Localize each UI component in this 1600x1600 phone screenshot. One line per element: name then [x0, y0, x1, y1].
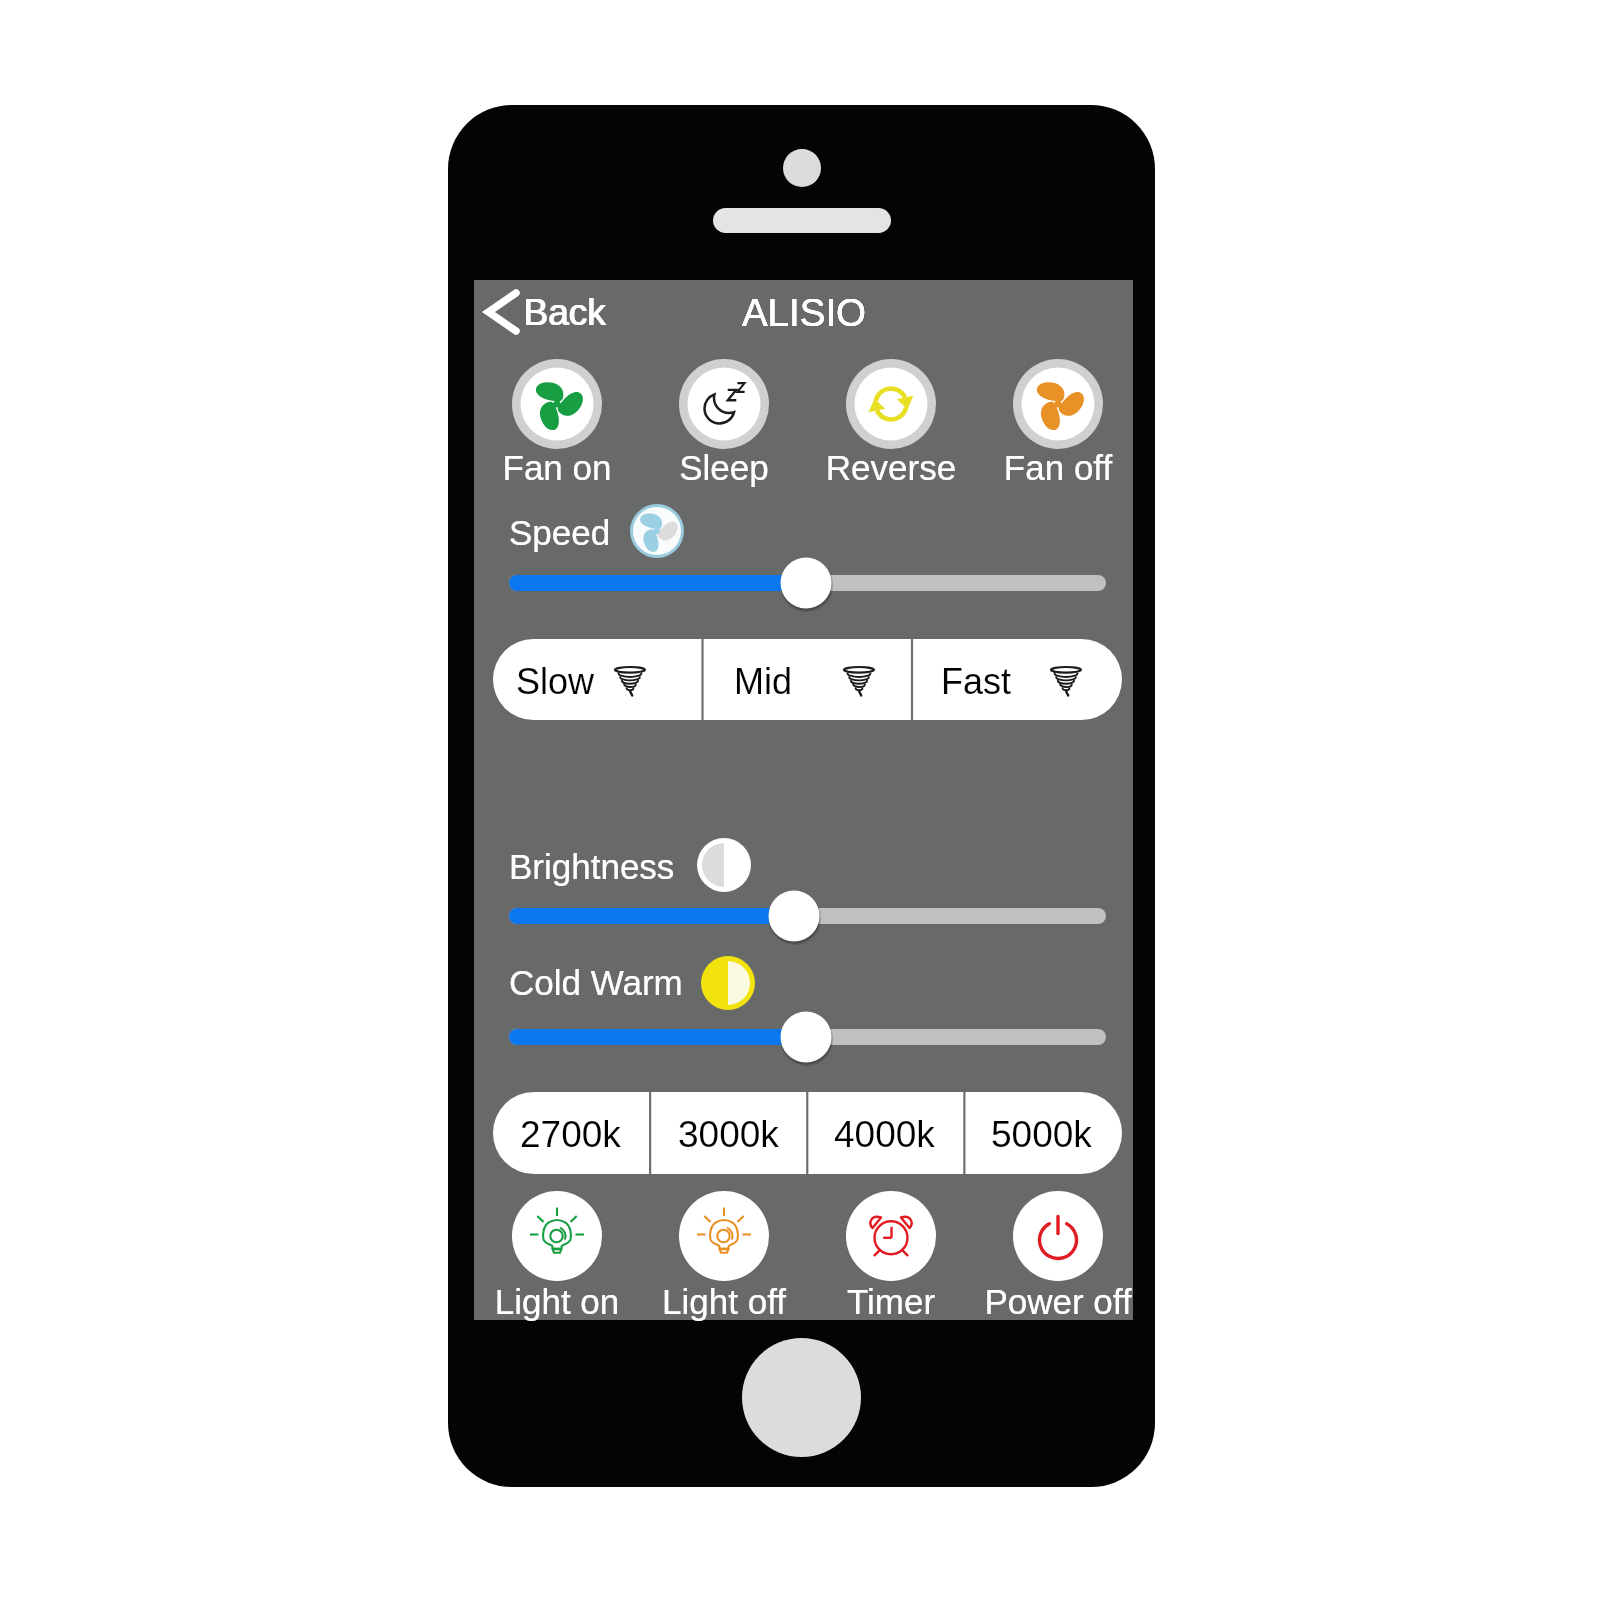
staticText: Timer: [761, 1282, 1021, 1321]
button[interactable]: Power off: [976, 1186, 1140, 1318]
button[interactable]: Fast: [913, 639, 1122, 720]
staticText: ALISIO: [654, 291, 954, 334]
button[interactable]: Slider: [509, 1029, 1106, 1045]
button[interactable]: Slider thumb: [777, 554, 835, 612]
staticText: Back: [524, 292, 607, 333]
button[interactable]: Slider thumb: [777, 1008, 835, 1066]
staticText: 5000k: [991, 1114, 1092, 1155]
button[interactable]: Mid: [703, 639, 913, 720]
staticText: Brightness: [509, 847, 675, 886]
staticText: Power off: [928, 1282, 1188, 1321]
button[interactable]: Slider: [509, 575, 1106, 591]
button[interactable]: 4000k: [807, 1092, 964, 1174]
staticText: Slow: [516, 661, 595, 701]
staticText: Light on: [427, 1282, 687, 1321]
button[interactable]: Fan on: [475, 354, 639, 486]
button[interactable]: Sleep: [642, 354, 806, 486]
button[interactable]: Light on: [475, 1186, 639, 1318]
button[interactable]: Reverse: [809, 354, 973, 486]
button[interactable]: 3000k: [650, 1092, 807, 1174]
button[interactable]: Timer: [809, 1186, 973, 1318]
staticText: 4000k: [834, 1114, 935, 1155]
staticText: ALISIO: [654, 291, 954, 334]
staticText: Fan on: [427, 448, 687, 487]
staticText: 3000k: [678, 1114, 779, 1155]
staticText: Reverse: [761, 448, 1021, 487]
staticText: Mid: [734, 661, 793, 701]
button[interactable]: Slider thumb: [765, 887, 823, 945]
button[interactable]: 5000k: [964, 1092, 1121, 1174]
button[interactable]: Back: [478, 285, 612, 339]
button[interactable]: Fan off: [976, 354, 1140, 486]
button[interactable]: 2700k: [493, 1092, 650, 1174]
staticText: 2700k: [520, 1114, 621, 1155]
button[interactable]: Light off: [642, 1186, 806, 1318]
staticText: Back: [523, 292, 606, 333]
staticText: Fast: [941, 661, 1012, 701]
staticText: Cold Warm: [509, 963, 683, 1002]
button[interactable]: Slow: [493, 639, 703, 720]
staticText: Fan off: [928, 448, 1188, 487]
staticText: Light off: [594, 1282, 854, 1321]
button[interactable]: Slider: [509, 908, 1106, 924]
staticText: Speed: [509, 513, 611, 552]
staticText: Sleep: [594, 448, 854, 487]
